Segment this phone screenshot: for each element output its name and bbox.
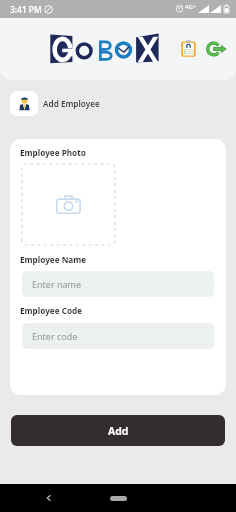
button[interactable]: Home	[110, 496, 127, 501]
staticText: Add	[108, 424, 129, 438]
staticText: Add Employee	[43, 98, 100, 109]
staticText: Employee Name	[20, 254, 87, 265]
button[interactable]: Enter name	[22, 271, 214, 297]
button[interactable]: Attendance records	[178, 38, 199, 59]
button[interactable]: Enter code	[22, 323, 214, 349]
staticText: Enter code	[32, 330, 78, 342]
button[interactable]: Pick employee photo	[22, 164, 115, 245]
button[interactable]: Logout	[204, 38, 229, 59]
staticText: Enter name	[32, 278, 82, 290]
staticText: 4G+	[185, 3, 197, 11]
staticText: 3:41 PM	[10, 4, 42, 15]
staticText: Employee Code	[20, 305, 83, 316]
staticText: Employee Photo	[20, 147, 86, 158]
button[interactable]: Add	[11, 415, 225, 446]
button[interactable]: Back	[40, 489, 58, 507]
button[interactable]: Add Employee	[10, 91, 100, 116]
